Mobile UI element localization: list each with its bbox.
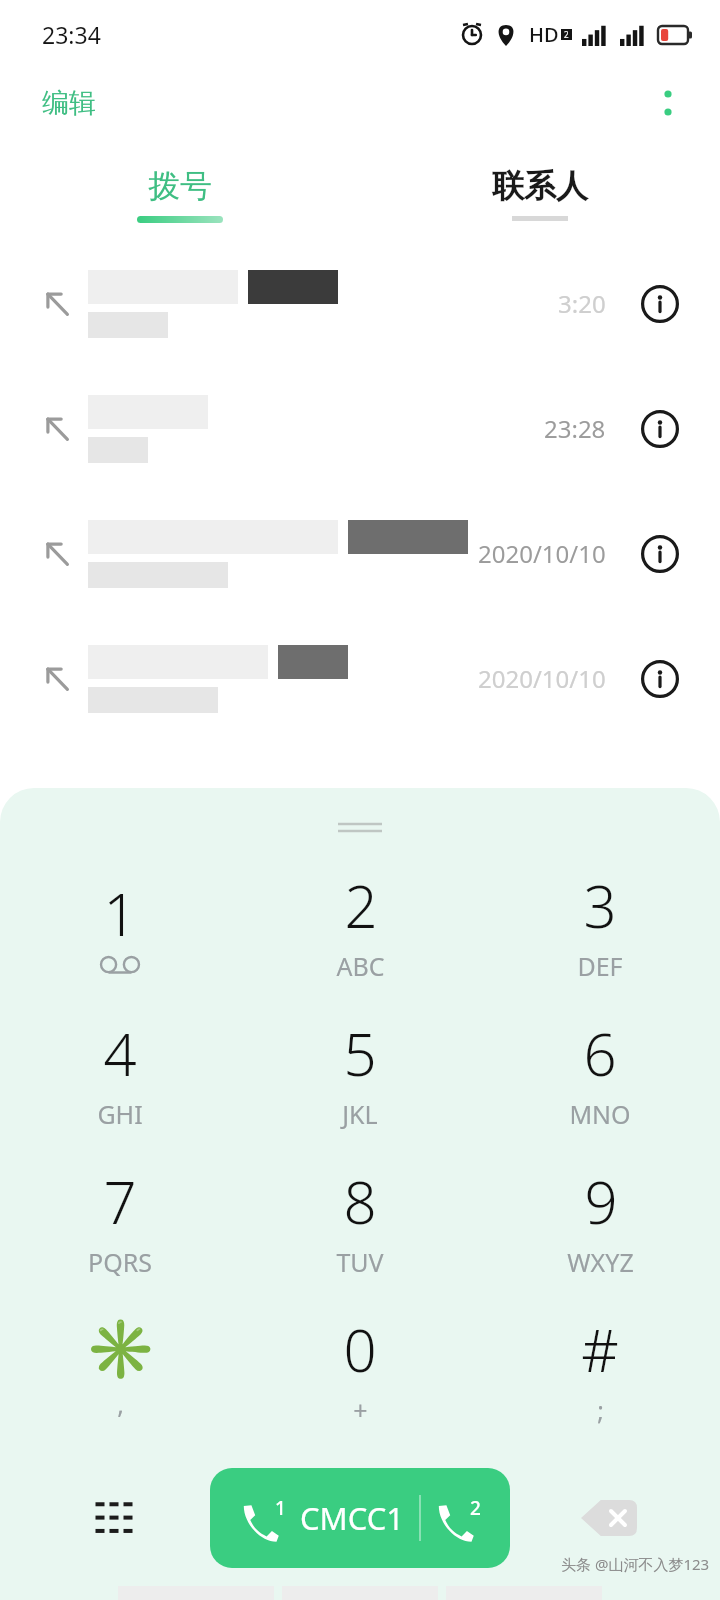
staticText: WXYZ xyxy=(567,1245,634,1279)
button[interactable]: 4 xyxy=(0,998,240,1146)
button[interactable]: Call details xyxy=(628,272,692,336)
staticText: , xyxy=(117,1387,124,1421)
button[interactable]: 2020/10/10 xyxy=(0,616,720,741)
staticText: 23:34 xyxy=(42,19,101,50)
button[interactable]: Keypad xyxy=(82,1485,148,1551)
button[interactable]: 编辑 xyxy=(0,76,116,130)
staticText: JKL xyxy=(342,1097,378,1131)
button[interactable]: 7 xyxy=(0,1146,240,1294)
staticText: PQRS xyxy=(88,1245,152,1279)
staticText: # xyxy=(581,1310,619,1389)
button[interactable]: 5 xyxy=(240,998,480,1146)
button[interactable]: 联系人 xyxy=(360,166,720,221)
staticText: 2 xyxy=(564,29,569,40)
staticText: GHI xyxy=(97,1097,143,1131)
staticText: 1 xyxy=(103,874,137,953)
button[interactable]: 2020/10/10 xyxy=(0,491,720,616)
staticText: 拨号 xyxy=(148,166,212,206)
button[interactable]: Call details xyxy=(628,397,692,461)
button[interactable]: More options xyxy=(644,79,692,127)
button[interactable]: Call details xyxy=(628,522,692,586)
button[interactable]: 23:28 xyxy=(0,366,720,491)
button[interactable]: 8 xyxy=(240,1146,480,1294)
staticText: ABC xyxy=(336,949,385,983)
staticText: 2 xyxy=(344,866,378,945)
staticText: 6 xyxy=(583,1014,617,1093)
staticText: 2 xyxy=(470,1495,481,1521)
staticText: 9 xyxy=(584,1162,618,1241)
staticText: 5 xyxy=(343,1014,377,1093)
button[interactable]: 1 xyxy=(210,1468,510,1568)
staticText: CMCC1 xyxy=(300,1497,405,1539)
staticText: + xyxy=(353,1393,368,1427)
staticText: 4 xyxy=(103,1014,137,1093)
staticText: TUV xyxy=(336,1245,384,1279)
staticText: HD xyxy=(529,21,559,48)
button[interactable]: 1 xyxy=(0,850,240,998)
staticText: DEF xyxy=(577,949,623,983)
staticText: MNO xyxy=(569,1097,631,1131)
staticText: 2020/10/10 xyxy=(478,537,606,570)
button[interactable]: 拨号 xyxy=(0,166,360,223)
staticText: 1 xyxy=(275,1495,286,1521)
button[interactable]: 3 xyxy=(480,850,720,998)
staticText: 0 xyxy=(343,1310,377,1389)
staticText: 8 xyxy=(343,1162,377,1241)
staticText: 2020/10/10 xyxy=(478,662,606,695)
button[interactable]: Backspace xyxy=(576,1485,642,1551)
button[interactable]: 0 xyxy=(240,1294,480,1442)
staticText: 头条 @山河不入梦123 xyxy=(561,1554,710,1574)
button[interactable]: # xyxy=(480,1294,720,1442)
staticText: 23:28 xyxy=(544,412,606,445)
button[interactable]: 3:20 xyxy=(0,241,720,366)
button[interactable]: ✳ xyxy=(0,1294,240,1442)
staticText: ✳ xyxy=(84,1315,157,1383)
button[interactable]: 9 xyxy=(480,1146,720,1294)
staticText: 3 xyxy=(583,866,617,945)
staticText: 编辑 xyxy=(42,86,96,120)
staticText: 3:20 xyxy=(558,287,606,320)
staticText: 联系人 xyxy=(492,166,588,206)
staticText: 7 xyxy=(103,1162,137,1241)
button[interactable]: 6 xyxy=(480,998,720,1146)
button[interactable]: 2 xyxy=(240,850,480,998)
button[interactable]: Call details xyxy=(628,647,692,711)
staticText: ; xyxy=(597,1393,604,1427)
